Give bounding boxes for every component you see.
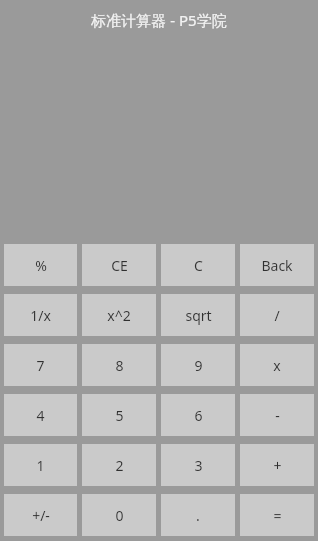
- staticText: x^2: [107, 306, 131, 325]
- staticText: +/-: [32, 506, 50, 525]
- staticText: +: [273, 456, 282, 475]
- button[interactable]: =: [240, 494, 314, 536]
- button[interactable]: 6: [161, 394, 235, 436]
- staticText: Back: [261, 256, 293, 275]
- staticText: =: [273, 506, 282, 525]
- staticText: %: [35, 256, 47, 275]
- button[interactable]: 4: [4, 394, 77, 436]
- staticText: /: [274, 306, 280, 325]
- button[interactable]: C: [161, 244, 235, 286]
- button[interactable]: sqrt: [161, 294, 235, 336]
- staticText: 7: [36, 356, 45, 375]
- button[interactable]: 1: [4, 444, 77, 486]
- button[interactable]: 1/x: [4, 294, 77, 336]
- staticText: 3: [194, 456, 203, 475]
- staticText: 2: [115, 456, 124, 475]
- staticText: 1/x: [30, 306, 51, 325]
- staticText: 9: [194, 356, 203, 375]
- button[interactable]: CE: [82, 244, 156, 286]
- button[interactable]: 9: [161, 344, 235, 386]
- button[interactable]: x^2: [82, 294, 156, 336]
- staticText: C: [194, 256, 203, 275]
- button[interactable]: +: [240, 444, 314, 486]
- staticText: CE: [111, 256, 128, 275]
- button[interactable]: %: [4, 244, 77, 286]
- button[interactable]: x: [240, 344, 314, 386]
- staticText: 4: [36, 406, 45, 425]
- staticText: 0: [115, 506, 124, 525]
- button[interactable]: 8: [82, 344, 156, 386]
- staticText: 5: [115, 406, 124, 425]
- staticText: 8: [115, 356, 124, 375]
- staticText: -: [275, 406, 280, 425]
- staticText: x: [273, 356, 281, 375]
- button[interactable]: 3: [161, 444, 235, 486]
- button[interactable]: -: [240, 394, 314, 436]
- staticText: .: [196, 506, 200, 525]
- staticText: 标准计算器 - P5学院: [91, 10, 227, 30]
- button[interactable]: 5: [82, 394, 156, 436]
- button[interactable]: .: [161, 494, 235, 536]
- button[interactable]: +/-: [4, 494, 77, 536]
- button[interactable]: 7: [4, 344, 77, 386]
- staticText: sqrt: [185, 306, 212, 325]
- button[interactable]: Back: [240, 244, 314, 286]
- button[interactable]: 2: [82, 444, 156, 486]
- button[interactable]: 0: [82, 494, 156, 536]
- staticText: 1: [36, 456, 45, 475]
- button[interactable]: /: [240, 294, 314, 336]
- staticText: 6: [194, 406, 203, 425]
